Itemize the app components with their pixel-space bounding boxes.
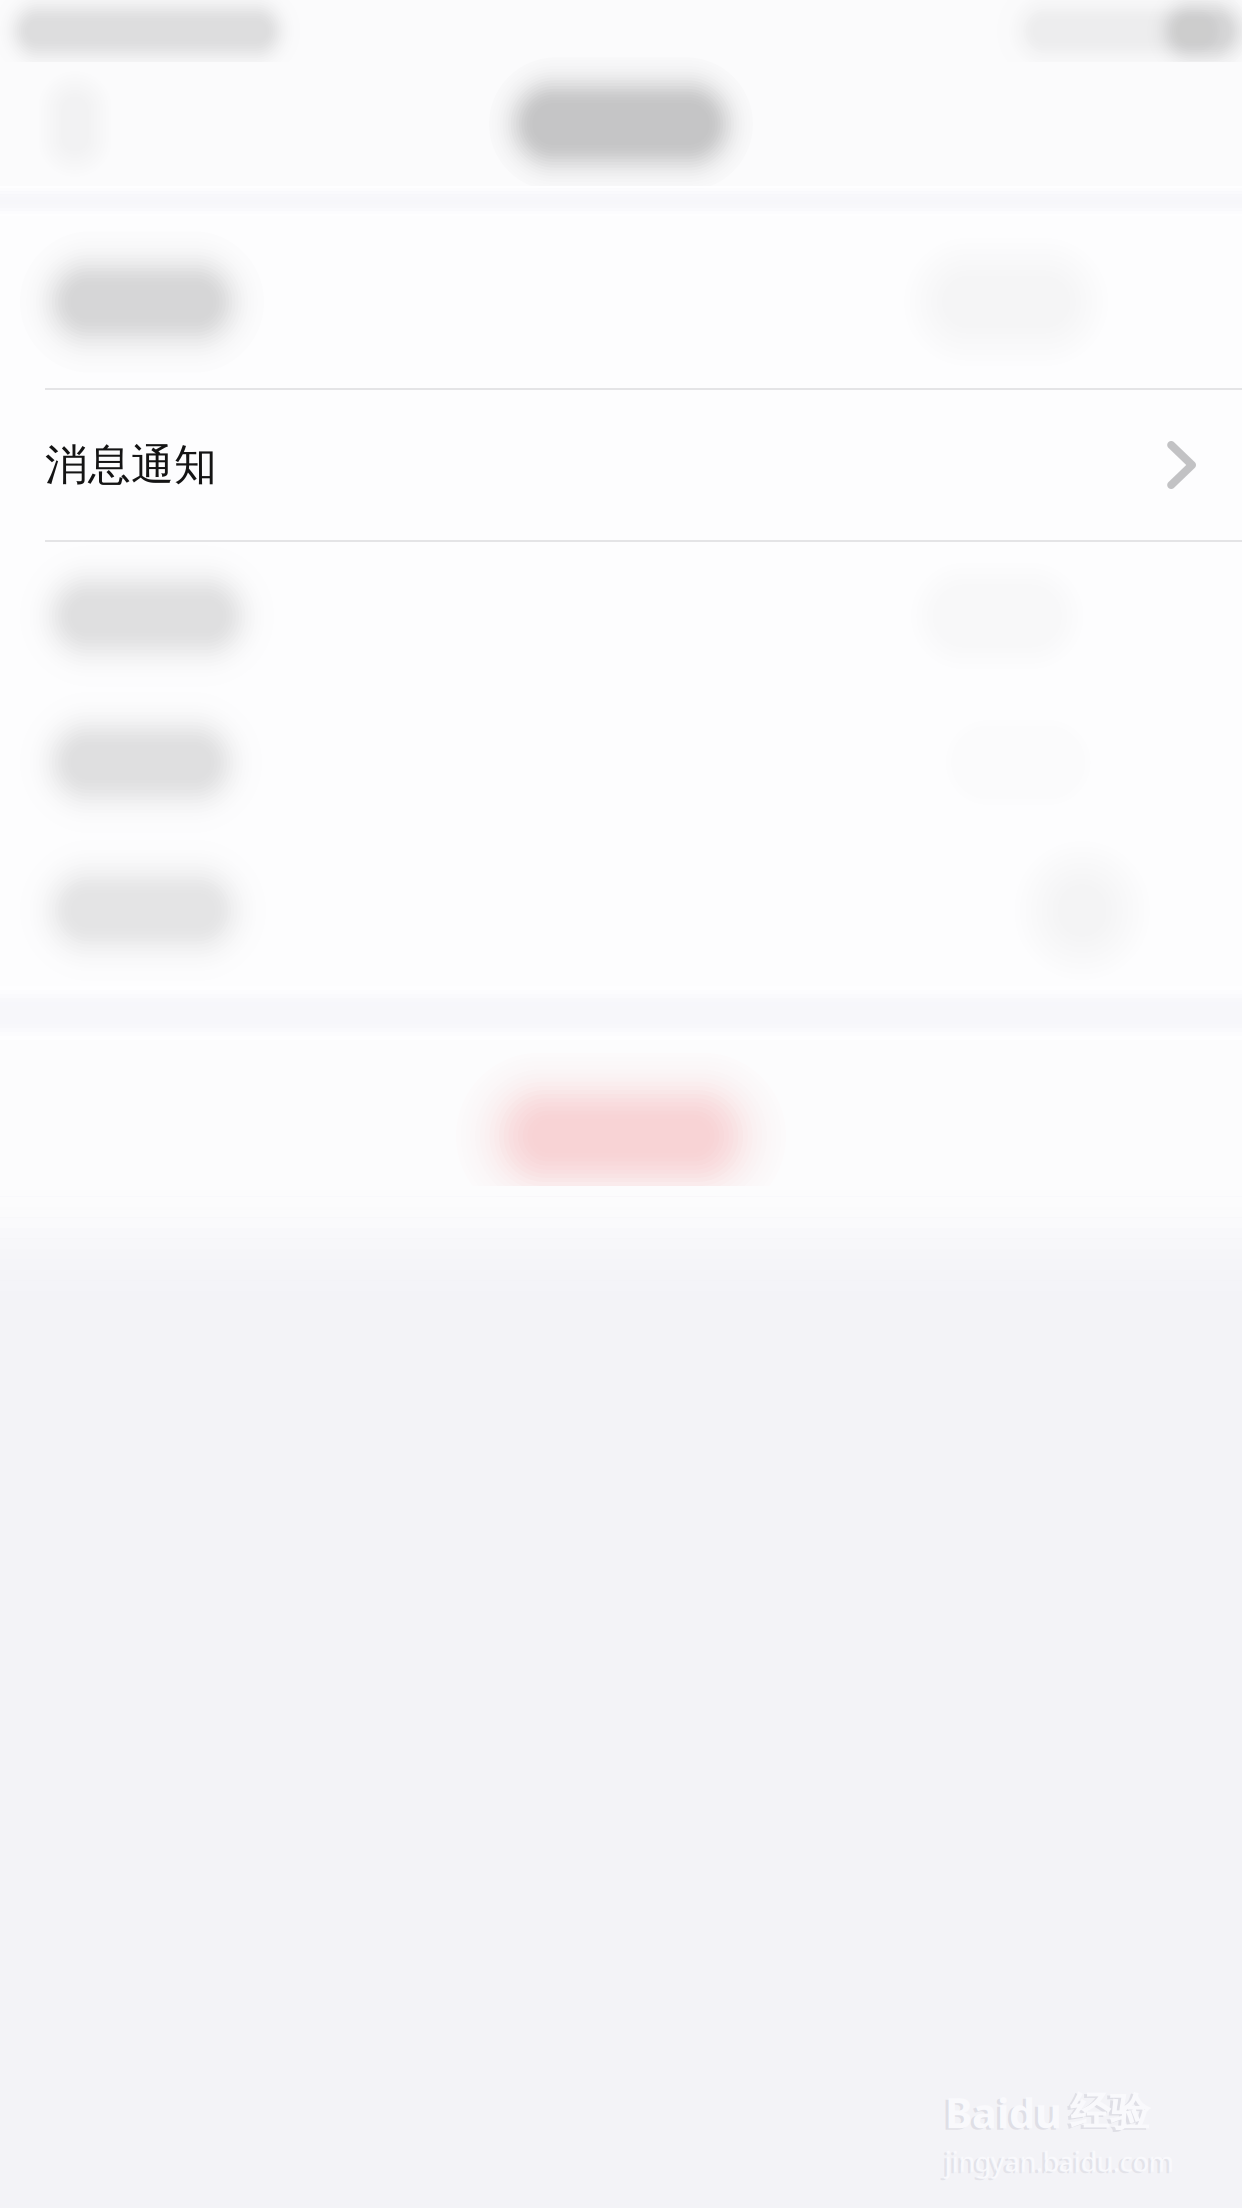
staticText: Baidu [945, 2085, 1062, 2140]
staticText: 经验 [1070, 2088, 1150, 2137]
staticText: Baidu [942, 2086, 1059, 2141]
staticText: 消息通知 [45, 439, 217, 491]
button[interactable]: Setting [0, 835, 1242, 986]
staticText: 经验 [1067, 2089, 1147, 2138]
button[interactable]: Setting [0, 216, 1242, 388]
staticText: jingyan.baidu.com [942, 2145, 1171, 2180]
button[interactable]: Log out [0, 1040, 1242, 1186]
staticText: jingyan.baidu.com [945, 2144, 1174, 2179]
button[interactable]: Setting [0, 690, 1242, 835]
button[interactable]: Setting [0, 542, 1242, 690]
button[interactable]: 消息通知 [0, 390, 1242, 540]
